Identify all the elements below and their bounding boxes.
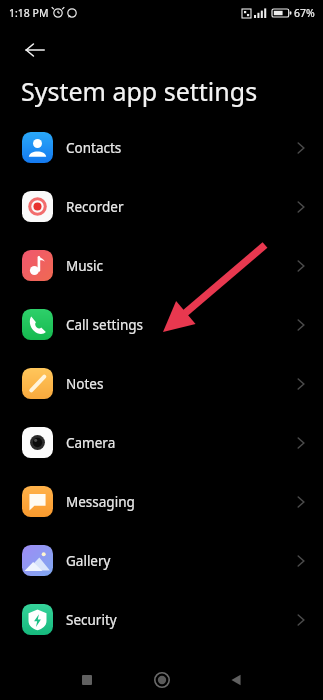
- staticText: Notes: [66, 375, 104, 393]
- staticText: Call settings: [66, 316, 144, 334]
- button[interactable]: Gallery: [0, 531, 323, 590]
- button[interactable]: Recents: [70, 663, 104, 697]
- staticText: Messaging: [66, 493, 135, 511]
- staticText: 67%: [294, 6, 315, 20]
- button[interactable]: Notes: [0, 354, 323, 413]
- button[interactable]: Music: [0, 236, 323, 295]
- staticText: Recorder: [66, 198, 124, 216]
- button[interactable]: Back: [16, 31, 54, 69]
- button[interactable]: Call settings: [0, 295, 323, 354]
- staticText: Gallery: [66, 552, 111, 570]
- staticText: System app settings: [21, 74, 258, 108]
- button[interactable]: Recorder: [0, 177, 323, 236]
- staticText: Camera: [66, 434, 116, 452]
- button[interactable]: Contacts: [0, 118, 323, 177]
- staticText: Security: [66, 611, 117, 629]
- button[interactable]: Camera: [0, 413, 323, 472]
- staticText: Music: [66, 257, 104, 275]
- button[interactable]: Security: [0, 590, 323, 649]
- button[interactable]: Messaging: [0, 472, 323, 531]
- button[interactable]: Home: [145, 663, 179, 697]
- staticText: 1:18 PM: [9, 6, 49, 20]
- staticText: Contacts: [66, 139, 122, 157]
- button[interactable]: Back: [219, 663, 253, 697]
